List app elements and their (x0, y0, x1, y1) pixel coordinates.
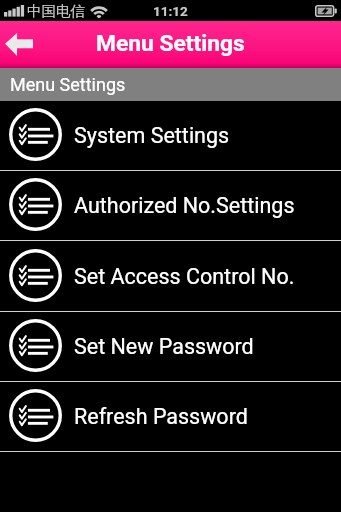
button[interactable]: Back (0, 21, 46, 68)
staticText: Menu Settings (10, 74, 126, 95)
staticText: Set New Password (74, 334, 254, 359)
staticText: System Settings (74, 123, 230, 148)
staticText: Set Access Control No. (74, 264, 295, 289)
button[interactable]: System Settings (0, 101, 341, 170)
button[interactable]: Set New Password (0, 312, 341, 381)
button[interactable]: Set Access Control No. (0, 242, 341, 311)
staticText: Menu Settings (96, 30, 245, 57)
button[interactable]: Authorized No.Settings (0, 171, 341, 240)
button[interactable]: Refresh Password (0, 382, 341, 451)
staticText: 11:12 (153, 3, 188, 19)
staticText: Refresh Password (74, 404, 248, 429)
staticText: Authorized No.Settings (74, 193, 295, 218)
staticText: 中国电信 (27, 2, 85, 20)
